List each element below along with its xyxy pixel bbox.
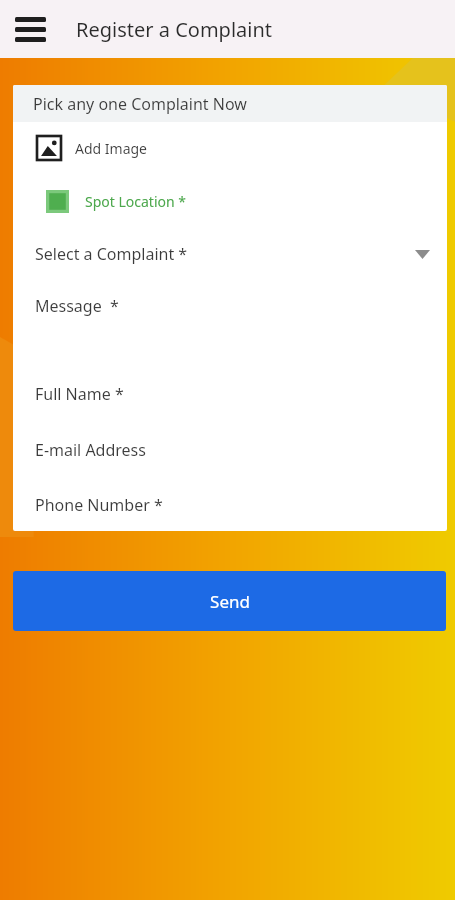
button[interactable]: E-mail Address [13,422,447,478]
staticText: Send [210,590,250,613]
button[interactable]: Full Name * [13,366,447,422]
staticText: Phone Number * [35,494,163,516]
staticText: Register a Complaint [76,16,272,43]
staticText: Spot Location * [85,192,186,211]
button[interactable]: Add Image [13,122,447,174]
button[interactable]: Open navigation menu [12,12,48,46]
staticText: Full Name * [35,383,124,405]
button[interactable]: Phone Number * [13,478,447,531]
button[interactable]: Spot Location * [13,174,447,228]
staticText: Add Image [75,139,148,158]
staticText: E-mail Address [35,439,146,461]
button[interactable]: Select a Complaint * [13,228,447,280]
button[interactable]: Send [13,571,446,631]
staticText: Pick any one Complaint Now [33,93,247,115]
button[interactable]: Message * [13,280,447,332]
staticText: Select a Complaint * [35,243,415,265]
staticText: Message * [35,295,119,317]
